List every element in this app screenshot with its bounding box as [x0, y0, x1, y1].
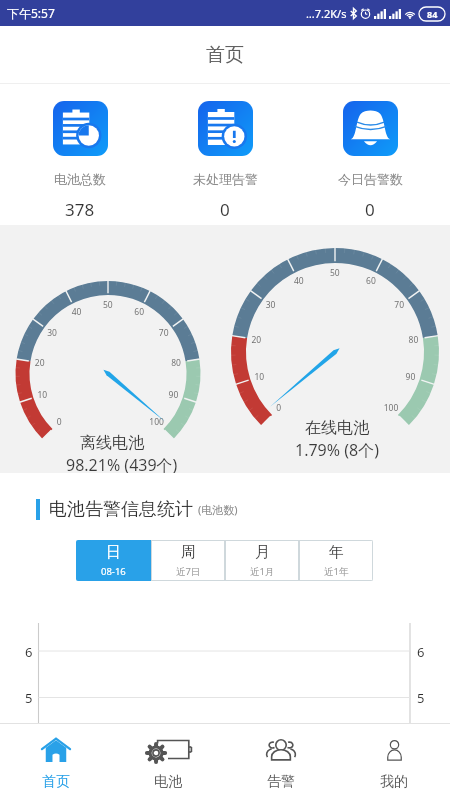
staticText: 周: [181, 543, 196, 562]
staticText: 未处理告警: [193, 171, 258, 187]
button[interactable]: 月: [225, 540, 299, 581]
staticText: 1.79% (8个): [295, 439, 379, 461]
button[interactable]: 电池: [112, 724, 224, 800]
button[interactable]: 今日告警数: [305, 84, 435, 225]
staticText: 98.21% (439个): [66, 454, 178, 476]
staticText: 378: [65, 198, 95, 221]
staticText: 近1年: [324, 565, 349, 578]
staticText: 日: [106, 543, 121, 562]
staticText: 6: [417, 643, 425, 661]
button[interactable]: 电池总数: [15, 84, 145, 225]
staticText: 首页: [42, 773, 70, 791]
staticText: 0: [365, 198, 375, 221]
staticText: 5: [25, 689, 33, 707]
staticText: (电池数): [198, 502, 238, 517]
staticText: 今日告警数: [338, 171, 403, 187]
staticText: 在线电池: [305, 418, 369, 438]
staticText: 0: [220, 198, 230, 221]
staticText: 近1月: [250, 565, 275, 578]
button[interactable]: 周: [151, 540, 225, 581]
staticText: 近7日: [176, 565, 201, 578]
staticText: 08-16: [101, 565, 126, 578]
button[interactable]: 首页: [0, 724, 112, 800]
button[interactable]: 日: [76, 540, 151, 581]
button[interactable]: 我的: [337, 724, 450, 800]
staticText: 我的: [380, 773, 408, 791]
staticText: 6: [25, 643, 33, 661]
staticText: 离线电池: [80, 433, 144, 453]
staticText: 电池告警信息统计: [49, 498, 193, 521]
staticText: 下午5:57: [7, 5, 55, 21]
staticText: 告警: [267, 773, 295, 791]
staticText: 电池: [154, 773, 182, 791]
staticText: 月: [255, 543, 270, 562]
staticText: 年: [329, 543, 344, 562]
button[interactable]: 告警: [224, 724, 337, 800]
staticText: 84: [427, 8, 438, 20]
button[interactable]: 未处理告警: [160, 84, 290, 225]
button[interactable]: 年: [299, 540, 373, 581]
staticText: …7.2K/s: [306, 6, 347, 21]
staticText: 首页: [206, 43, 244, 67]
staticText: 电池总数: [54, 171, 106, 187]
staticText: 5: [417, 689, 425, 707]
